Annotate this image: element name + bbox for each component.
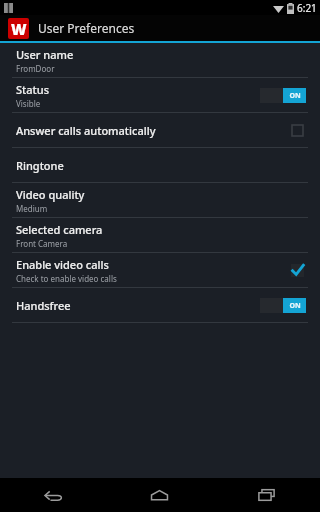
- staticText: FromDoor: [16, 63, 55, 74]
- button[interactable]: Enable video calls: [0, 253, 320, 287]
- button[interactable]: Toggle on: [260, 298, 306, 313]
- button[interactable]: Video quality: [0, 183, 320, 217]
- staticText: ON: [289, 91, 301, 101]
- staticText: Answer calls automatically: [16, 123, 156, 138]
- button[interactable]: Home: [106, 478, 213, 512]
- button[interactable]: Toggle on: [260, 88, 306, 103]
- staticText: Ringtone: [16, 158, 64, 173]
- button[interactable]: Checkbox unchecked: [288, 121, 306, 139]
- staticText: Status: [16, 82, 50, 97]
- staticText: Visible: [16, 98, 41, 109]
- staticText: W: [11, 19, 27, 39]
- staticText: Enable video calls: [16, 257, 109, 272]
- staticText: Medium: [16, 203, 48, 214]
- staticText: Selected camera: [16, 222, 103, 237]
- button[interactable]: Checkbox checked: [288, 261, 306, 279]
- staticText: Handsfree: [16, 298, 71, 313]
- button[interactable]: Recent apps: [213, 478, 320, 512]
- button[interactable]: Back: [0, 478, 106, 512]
- staticText: Check to enable video calls: [16, 273, 117, 284]
- button[interactable]: Answer calls automatically: [0, 113, 320, 147]
- staticText: User name: [16, 47, 74, 62]
- staticText: 6:21: [297, 1, 317, 15]
- button[interactable]: Handsfree: [0, 288, 320, 322]
- button[interactable]: W: [0, 15, 320, 41]
- button[interactable]: Selected camera: [0, 218, 320, 252]
- button[interactable]: User name: [0, 43, 320, 77]
- staticText: Front Camera: [16, 238, 68, 249]
- staticText: User Preferences: [38, 20, 135, 36]
- button[interactable]: Status: [0, 78, 320, 112]
- staticText: Video quality: [16, 187, 85, 202]
- staticText: ON: [289, 301, 301, 311]
- button[interactable]: Ringtone: [0, 148, 320, 182]
